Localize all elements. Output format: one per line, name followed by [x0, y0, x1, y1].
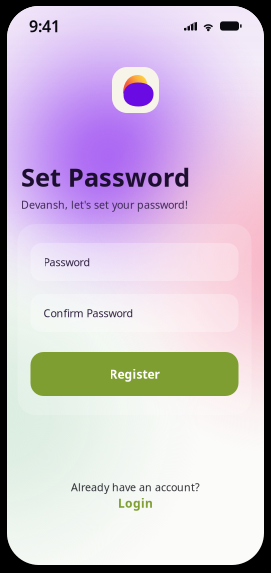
staticText: 9:41	[29, 15, 60, 37]
staticText: Login	[118, 495, 153, 511]
button[interactable]: Confirm Password	[30, 294, 238, 332]
staticText: Register	[109, 366, 159, 382]
staticText: Already have an account?	[71, 480, 200, 494]
staticText: Password	[43, 255, 90, 269]
button[interactable]: Login	[118, 495, 153, 511]
staticText: Confirm Password	[43, 306, 133, 320]
staticText: Devansh, let's set your password!	[21, 198, 188, 212]
button[interactable]: Password	[30, 243, 238, 281]
staticText: Set Password	[21, 160, 190, 194]
button[interactable]: Register	[30, 352, 238, 396]
